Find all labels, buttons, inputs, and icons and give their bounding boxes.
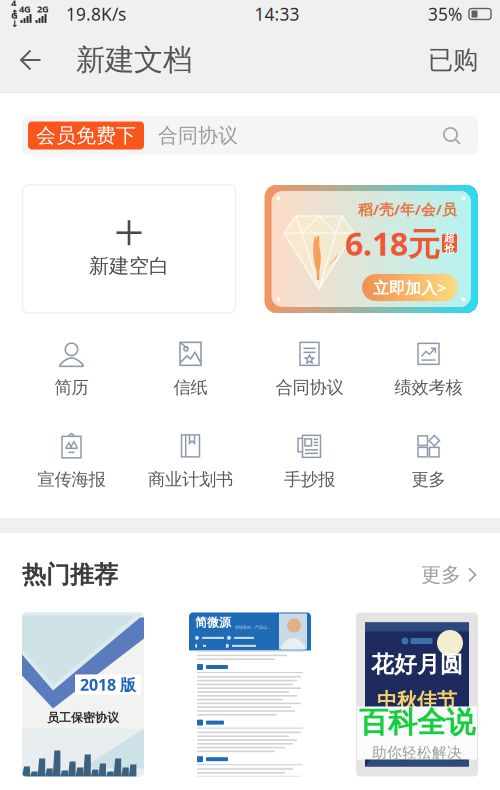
staticText: 宣传海报 <box>37 469 105 490</box>
button[interactable]: 花好月圆 <box>356 612 478 776</box>
staticText: 已购 <box>428 44 478 75</box>
staticText: 信纸 <box>173 377 207 398</box>
staticText: 35% <box>428 2 462 25</box>
button[interactable]: 会员免费下 <box>22 116 478 155</box>
staticText: 热门推荐 <box>22 560 118 589</box>
button[interactable]: 简微源 <box>189 612 311 776</box>
staticText: 百科全说 <box>359 704 475 740</box>
button[interactable]: 新建空白 <box>22 185 235 313</box>
button[interactable]: 稻/壳/年/会/员 <box>264 185 477 313</box>
staticText: 抢 <box>444 242 455 255</box>
staticText: 绩效考核 <box>394 377 462 398</box>
button[interactable]: 信纸 <box>131 341 250 397</box>
staticText: 商业计划书 <box>148 469 233 490</box>
button[interactable]: 宣传海报 <box>12 433 131 489</box>
staticText: 会员免费下 <box>36 123 136 148</box>
staticText: 更多 <box>421 562 461 587</box>
staticText: 花好月圆 <box>371 650 463 678</box>
staticText: 立即加入> <box>373 277 446 298</box>
staticText: 员工保密协议 <box>47 710 119 725</box>
button[interactable]: 2018 版 <box>22 612 144 776</box>
staticText: 中秋佳节 <box>377 688 457 713</box>
staticText: 合同协议 <box>158 123 238 148</box>
staticText: 求职意向：产品运营专员 <box>235 624 271 630</box>
button[interactable]: 已购 <box>414 28 492 92</box>
staticText: 新建空白 <box>89 254 169 278</box>
staticText: ↑↓ <box>11 8 19 29</box>
button[interactable]: 更多 <box>421 562 478 587</box>
button[interactable]: 商业计划书 <box>131 433 250 489</box>
button[interactable]: 合同协议 <box>250 341 369 397</box>
staticText: 超 <box>444 231 455 244</box>
staticText: 14:33 <box>254 2 299 25</box>
staticText: 4G <box>19 3 31 15</box>
button[interactable]: 绩效考核 <box>369 341 488 397</box>
button[interactable]: Back <box>8 28 54 92</box>
staticText: 简历 <box>54 377 88 398</box>
staticText: 19.8K/s <box>66 2 126 25</box>
staticText: 手抄报 <box>284 469 335 490</box>
staticText: 合同协议 <box>275 377 343 398</box>
staticText: 简微源 <box>195 615 231 630</box>
staticText: 更多 <box>411 469 445 490</box>
staticText: 4G <box>11 0 18 21</box>
button[interactable]: 更多 <box>369 433 488 489</box>
button[interactable]: 手抄报 <box>250 433 369 489</box>
staticText: 助你轻松解决 <box>372 743 462 761</box>
button[interactable]: 简历 <box>12 341 131 397</box>
staticText: 新建文档 <box>76 42 192 78</box>
staticText: 稻/壳/年/会/员 <box>358 199 457 219</box>
staticText: 2018 版 <box>80 674 136 695</box>
staticText: 2G <box>37 3 49 15</box>
staticText: 6.18元 <box>345 222 440 264</box>
